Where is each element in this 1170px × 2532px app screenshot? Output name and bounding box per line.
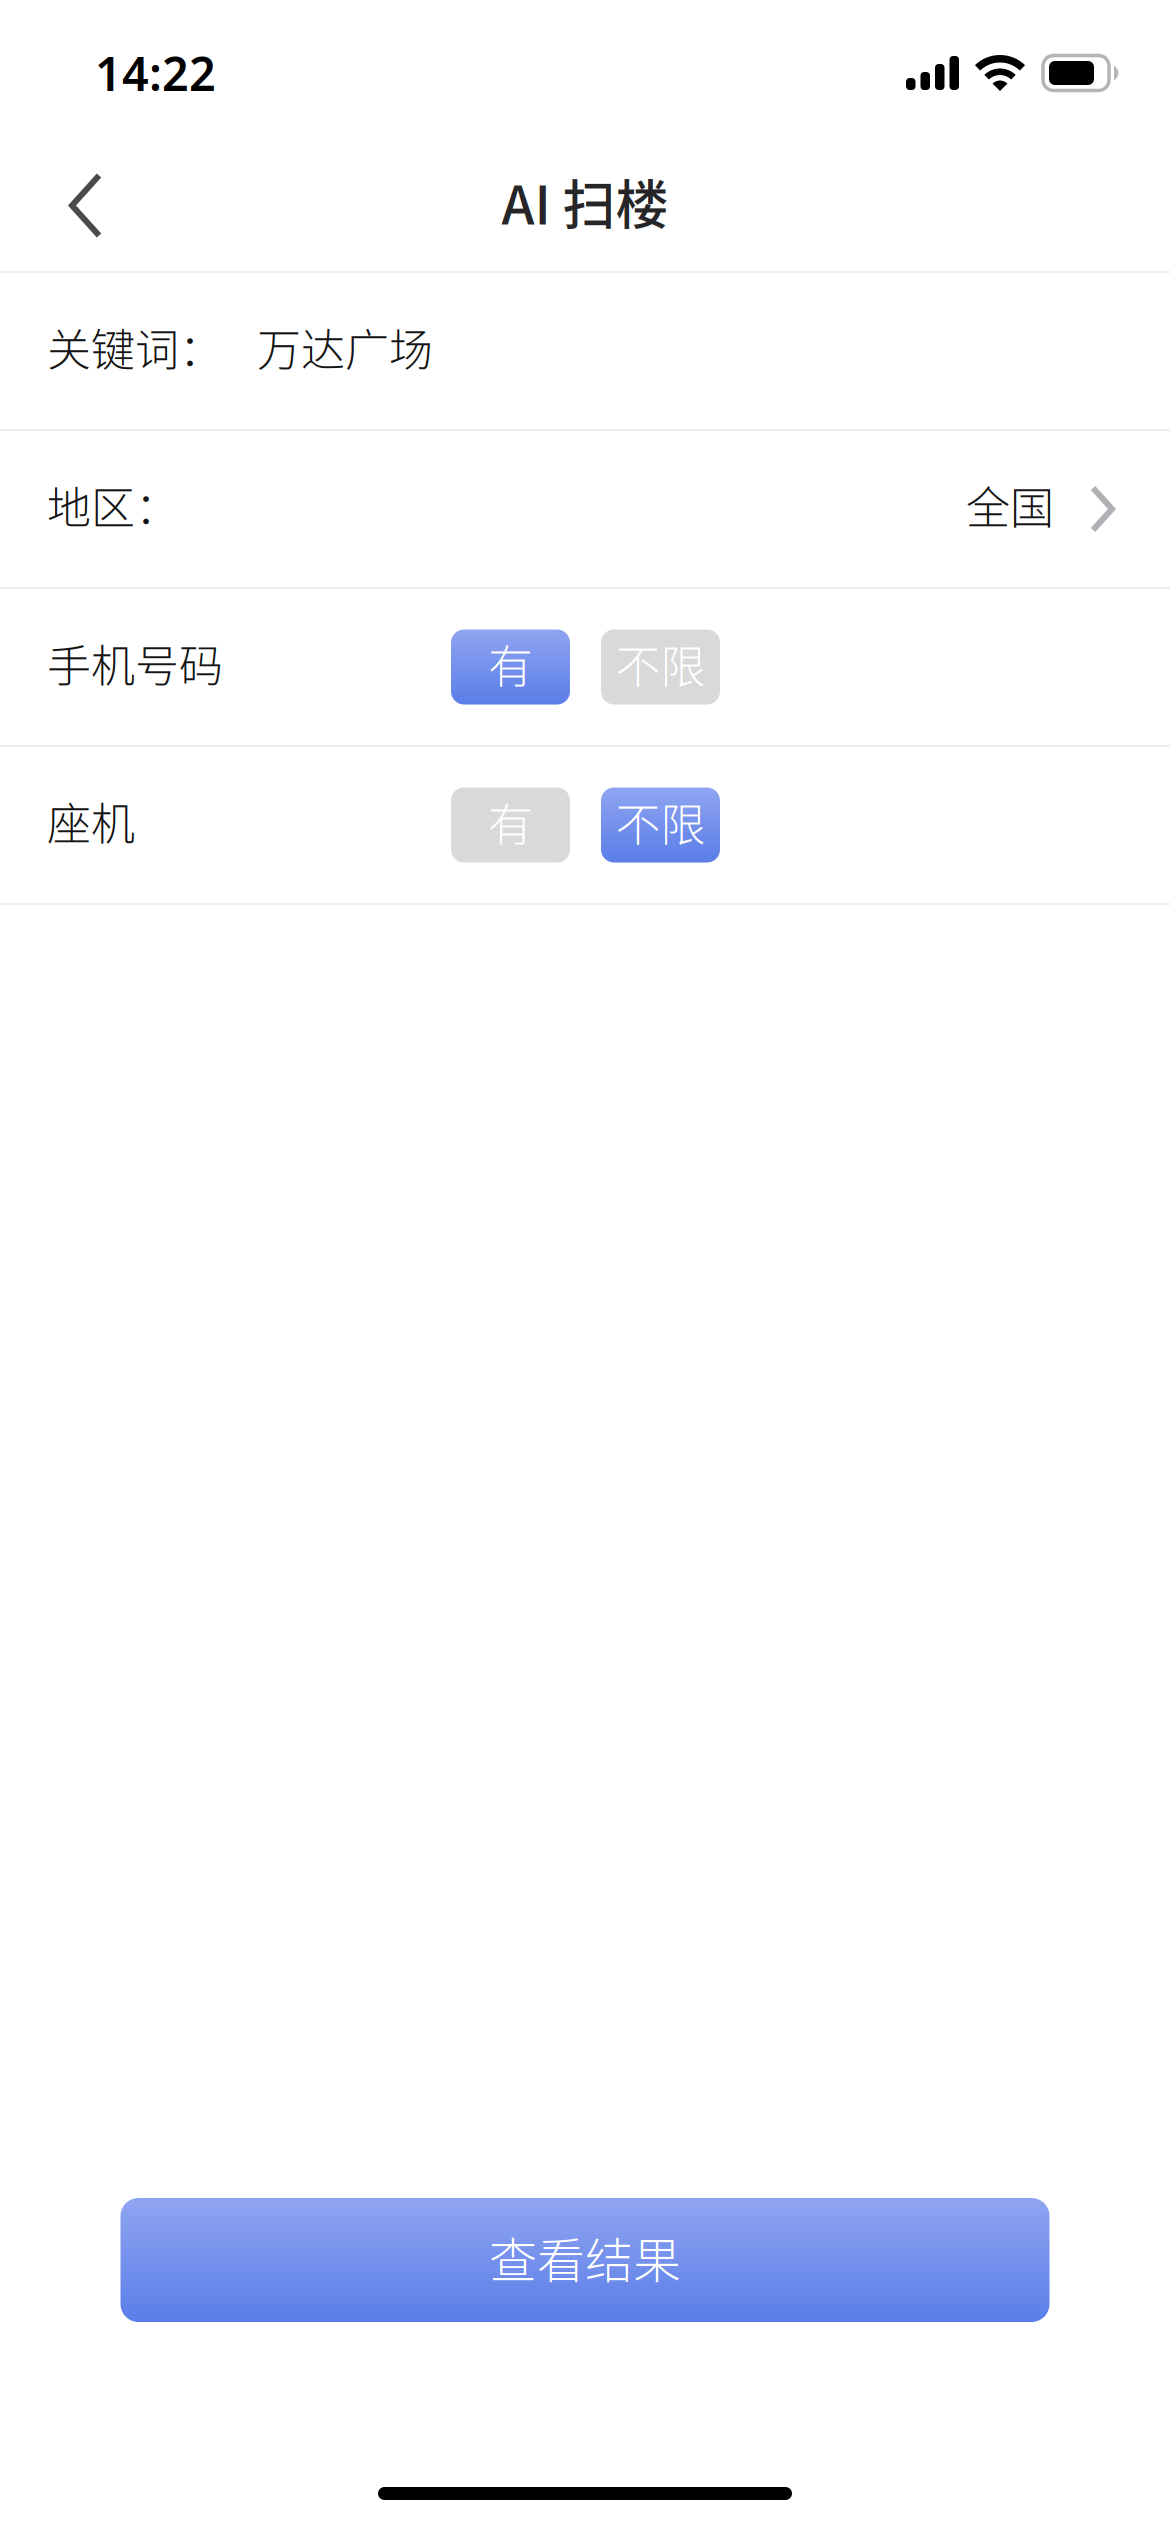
staticText: 不限	[615, 789, 705, 855]
staticText: 手机号码	[47, 631, 223, 695]
staticText: 座机	[47, 789, 135, 853]
staticText: AI 扫楼	[501, 163, 668, 240]
staticText: 万达广场	[257, 315, 433, 379]
staticText: 关键词：	[47, 315, 223, 379]
button[interactable]: 地区：	[0, 431, 1170, 587]
staticText: 查看结果	[489, 2222, 681, 2292]
staticText: 地区：	[47, 473, 179, 537]
staticText: 不限	[615, 631, 705, 697]
staticText: 全国	[966, 473, 1054, 537]
button[interactable]: 不限	[601, 787, 720, 862]
button[interactable]: Back	[0, 140, 152, 271]
staticText: 14:22	[95, 42, 216, 104]
staticText: 有	[488, 789, 533, 855]
button[interactable]: 有	[451, 787, 570, 862]
button[interactable]: 不限	[601, 629, 720, 704]
button[interactable]: 查看结果	[120, 2198, 1049, 2322]
staticText: 有	[488, 631, 533, 697]
button[interactable]: 有	[451, 629, 570, 704]
